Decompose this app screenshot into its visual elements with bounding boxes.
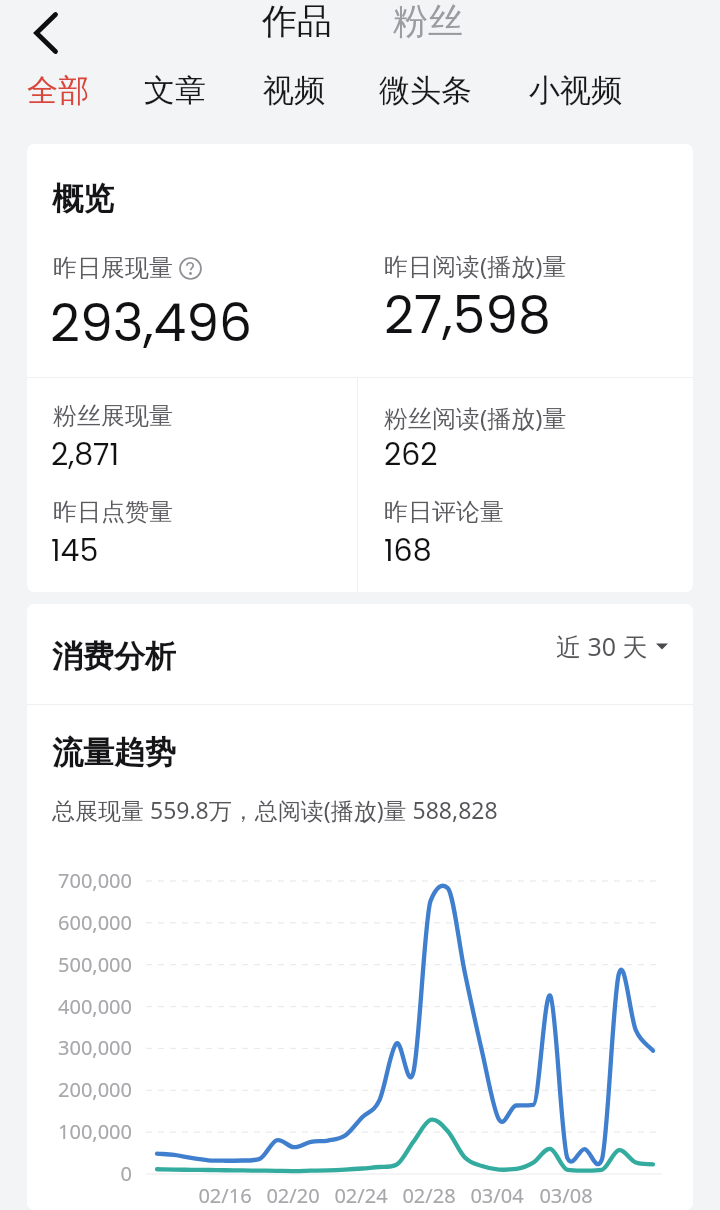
staticText: 03/04 — [452, 1182, 542, 1209]
button[interactable]: 微头条 — [370, 62, 481, 119]
staticText: 02/28 — [384, 1182, 474, 1209]
staticText: 总展现量 559.8万，总阅读(播放)量 588,828 — [52, 794, 498, 825]
staticText: 2,871 — [51, 434, 120, 476]
staticText: 400,000 — [20, 993, 132, 1020]
staticText: 流量趋势 — [52, 733, 176, 772]
staticText: 作品 — [262, 0, 332, 43]
staticText: 500,000 — [20, 951, 132, 978]
staticText: 03/08 — [521, 1182, 611, 1209]
staticText: 145 — [51, 530, 99, 572]
staticText: 293,496 — [50, 286, 253, 359]
staticText: 700,000 — [20, 867, 132, 894]
staticText: 昨日点赞量 — [53, 497, 173, 527]
staticText: 200,000 — [20, 1076, 132, 1103]
staticText: 粉丝 — [393, 0, 463, 43]
staticText: 小视频 — [529, 71, 622, 110]
staticText: 粉丝展现量 — [53, 401, 173, 431]
button[interactable]: 视频 — [254, 62, 334, 119]
button[interactable]: Back — [17, 4, 75, 62]
staticText: 微头条 — [379, 71, 472, 110]
staticText: 27,598 — [384, 278, 551, 351]
button[interactable]: 作品 — [254, 0, 340, 51]
staticText: 262 — [384, 434, 438, 476]
staticText: 300,000 — [20, 1034, 132, 1061]
staticText: 昨日评论量 — [384, 497, 504, 527]
staticText: 168 — [384, 530, 432, 572]
staticText: 消费分析 — [52, 637, 176, 676]
staticText: 视频 — [263, 71, 325, 110]
staticText: 近 30 天 — [556, 629, 648, 663]
button[interactable]: 粉丝 — [385, 0, 471, 51]
staticText: 02/20 — [248, 1182, 338, 1209]
staticText: 600,000 — [20, 909, 132, 936]
staticText: 粉丝阅读(播放)量 — [384, 401, 567, 434]
staticText: 概览 — [52, 179, 114, 218]
button[interactable]: 文章 — [135, 62, 215, 119]
staticText: 全部 — [27, 71, 89, 110]
button[interactable]: 全部 — [18, 62, 98, 119]
staticText: 02/24 — [316, 1182, 406, 1209]
staticText: 100,000 — [20, 1118, 132, 1145]
staticText: 文章 — [144, 71, 206, 110]
button[interactable]: 小视频 — [520, 62, 631, 119]
staticText: 0 — [20, 1160, 132, 1187]
staticText: 昨日阅读(播放)量 — [384, 249, 567, 282]
button[interactable]: 近 30 天 — [548, 619, 676, 673]
staticText: 02/16 — [180, 1182, 270, 1209]
staticText: 昨日展现量 — [53, 253, 173, 283]
